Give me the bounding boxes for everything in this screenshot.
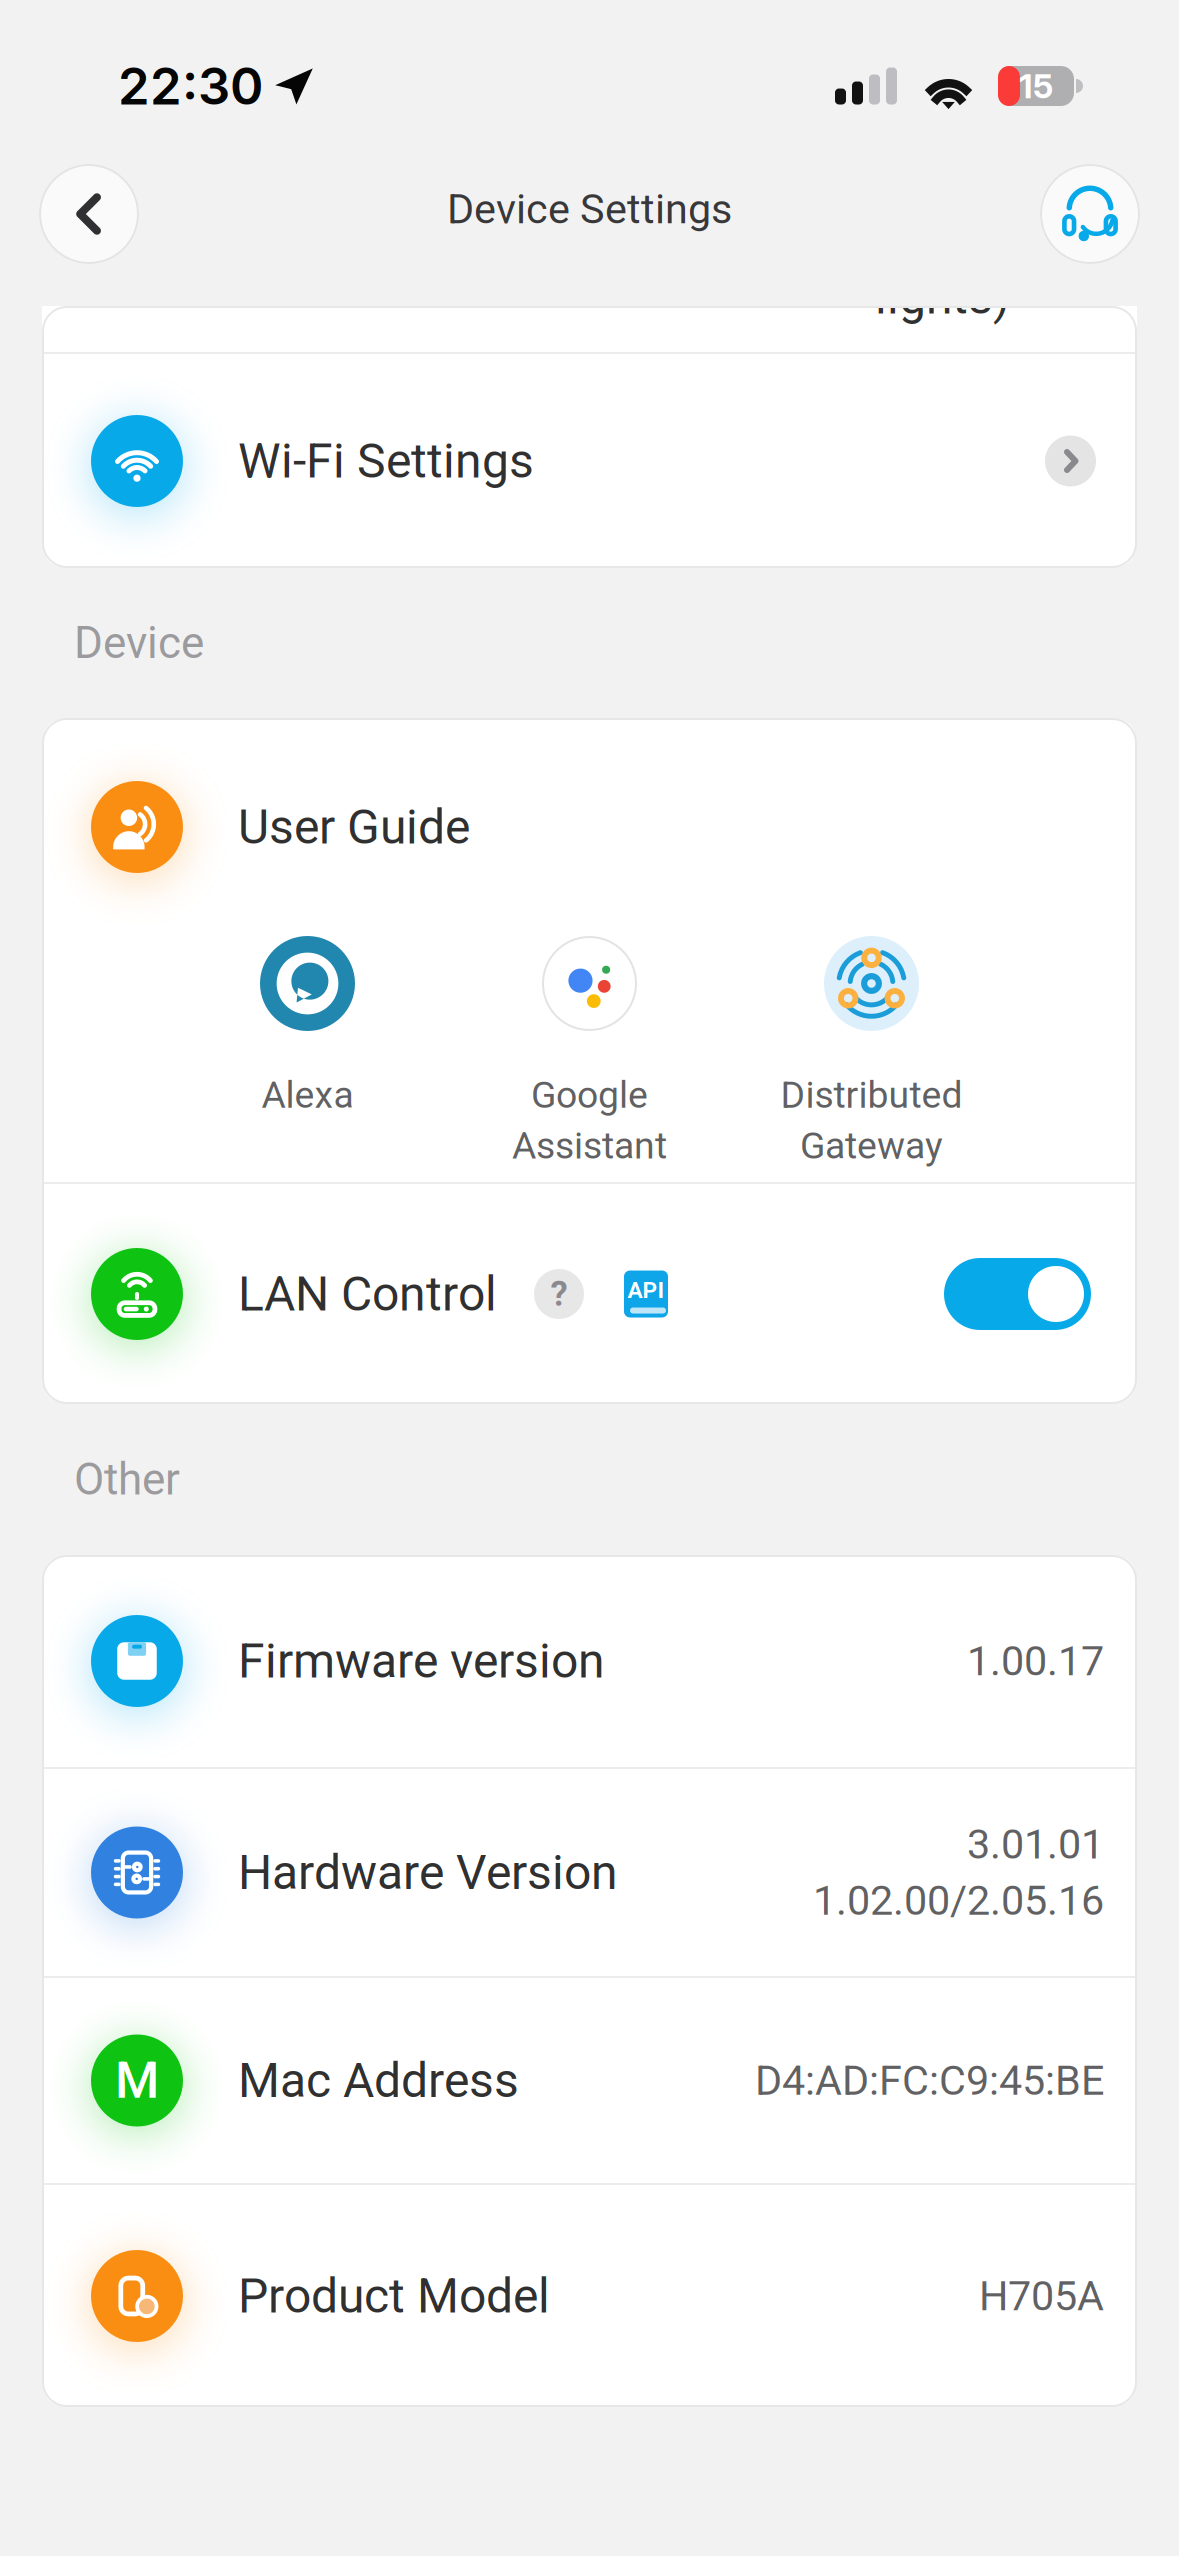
staticText: 1.00.17 <box>967 1637 1104 1685</box>
staticText: Mac Address <box>238 2052 519 2109</box>
staticText: Gateway <box>800 1124 943 1167</box>
staticText: 3.01.01 <box>967 1820 1104 1868</box>
button[interactable]: Customer support <box>1040 164 1140 264</box>
staticText: D4:AD:FC:C9:45:BE <box>755 2056 1104 2105</box>
button[interactable]: LAN Control <box>944 1258 1091 1330</box>
staticText: Hardware Version <box>238 1844 618 1901</box>
staticText: Product Model <box>238 2268 550 2324</box>
staticText: M <box>115 2051 159 2110</box>
staticText: Distributed <box>780 1073 962 1117</box>
staticText: LAN Control <box>238 1266 497 1322</box>
staticText: 1.02.00/2.05.16 <box>813 1876 1104 1925</box>
button[interactable]: Alexa <box>166 936 448 1182</box>
staticText: Device <box>74 617 204 669</box>
staticText: 15 <box>1019 66 1053 106</box>
staticText: Other <box>74 1454 180 1505</box>
staticText: User Guide <box>238 799 470 855</box>
button[interactable]: User Guide <box>42 718 1137 936</box>
staticText: Assistant <box>512 1124 667 1167</box>
button[interactable]: Help <box>534 1269 584 1319</box>
staticText: H705A <box>979 2272 1104 2320</box>
staticText: Alexa <box>261 1073 353 1117</box>
button[interactable]: Google <box>448 936 730 1182</box>
button[interactable]: API documentation <box>624 1269 668 1319</box>
button[interactable]: Distributed <box>730 936 1012 1182</box>
staticText: Wi-Fi Settings <box>238 433 534 489</box>
staticText: Google <box>531 1073 648 1117</box>
button[interactable]: Wi-Fi Settings <box>42 354 1137 568</box>
staticText: lights) <box>875 269 1010 325</box>
staticText: Device Settings <box>447 185 732 233</box>
staticText: 22:30 <box>118 55 263 117</box>
staticText: Firmware version <box>238 1633 605 1689</box>
staticText: API <box>627 1277 664 1303</box>
staticText: ? <box>550 1274 567 1314</box>
button[interactable]: Back <box>39 164 139 264</box>
